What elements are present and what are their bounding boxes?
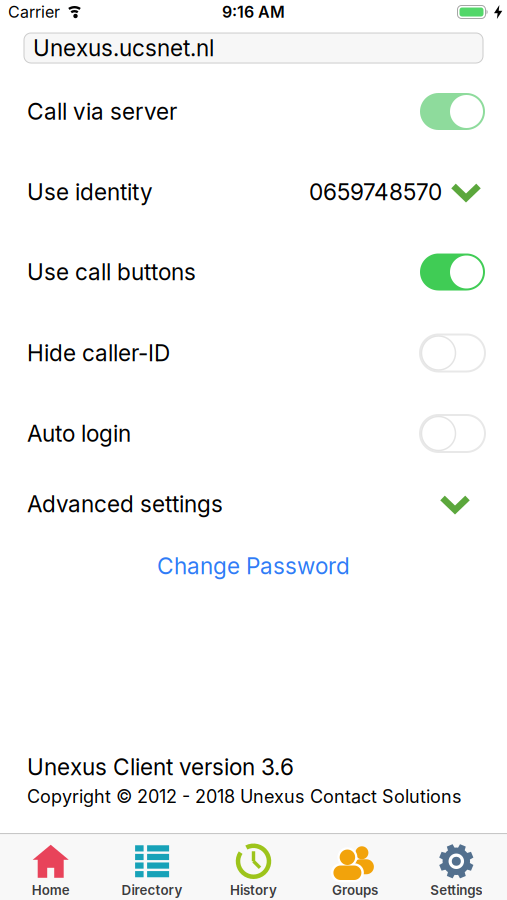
staticText: Settings <box>430 882 482 898</box>
staticText: Unexus.ucsnet.nl <box>33 35 214 61</box>
staticText: 0659748570 <box>309 179 442 205</box>
button[interactable]: History <box>203 843 304 898</box>
staticText: Groups <box>332 882 378 898</box>
button[interactable]: Home <box>0 843 101 898</box>
button[interactable]: Auto login <box>420 415 485 452</box>
button[interactable]: Advanced settings <box>0 481 507 527</box>
button[interactable]: Unexus.ucsnet.nl <box>0 28 507 63</box>
staticText: Change Password <box>157 553 350 579</box>
staticText: Advanced settings <box>27 491 223 517</box>
staticText: Auto login <box>27 420 131 447</box>
button[interactable]: Use call buttons <box>420 253 485 290</box>
staticText: History <box>230 882 277 898</box>
staticText: Use identity <box>27 179 153 205</box>
button[interactable]: Change Password <box>157 527 350 605</box>
button[interactable]: Use identity <box>0 160 507 224</box>
staticText: Call via server <box>27 98 177 125</box>
staticText: Home <box>32 882 70 898</box>
staticText: Unexus Client version 3.6 <box>27 754 294 780</box>
staticText: Copyright © 2012 - 2018 Unexus Contact S… <box>27 785 462 807</box>
staticText: Hide caller-ID <box>27 340 170 366</box>
staticText: 9:16 AM <box>222 3 285 21</box>
button[interactable]: Directory <box>101 843 203 898</box>
button[interactable]: Groups <box>304 843 406 898</box>
staticText: Carrier <box>8 3 60 21</box>
button[interactable]: Call via server <box>420 93 485 130</box>
staticText: Use call buttons <box>27 259 196 285</box>
button[interactable]: Hide caller-ID <box>420 334 485 371</box>
staticText: Directory <box>122 882 183 898</box>
button[interactable]: Settings <box>406 843 507 898</box>
